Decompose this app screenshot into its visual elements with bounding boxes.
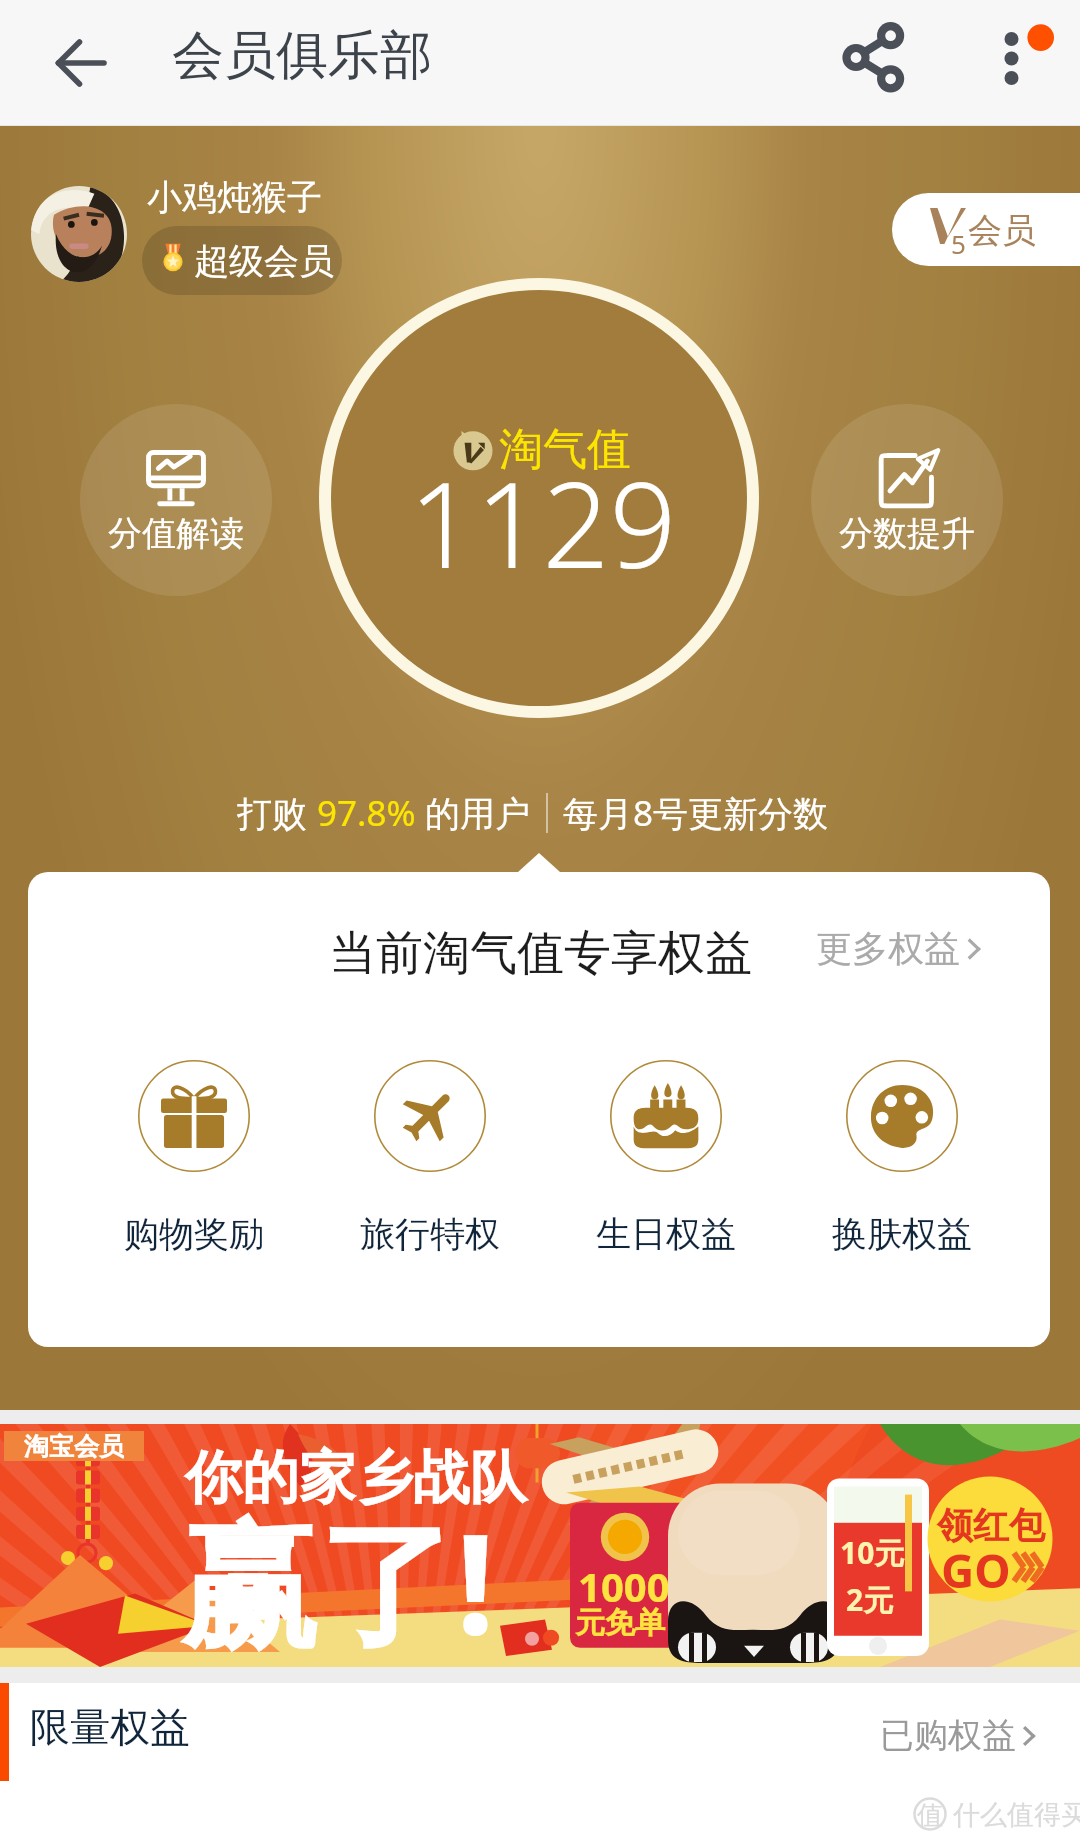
staticText: 每月8号更新分数 bbox=[563, 789, 829, 837]
button[interactable]: Promotion banner bbox=[0, 1424, 1080, 1667]
button[interactable]: 分值解读 bbox=[80, 404, 272, 596]
button[interactable]: Back bbox=[46, 28, 116, 98]
button[interactable]: 5 bbox=[892, 193, 1080, 266]
staticText: 更多权益 bbox=[816, 926, 960, 971]
staticText: 97.8% bbox=[317, 789, 416, 837]
button[interactable]: 生日权益 bbox=[586, 1060, 746, 1256]
staticText: 2元 bbox=[846, 1579, 894, 1620]
staticText: 淘宝会员 bbox=[24, 1431, 124, 1461]
staticText: 10元 bbox=[840, 1532, 905, 1573]
staticText: 淘气值 bbox=[499, 422, 631, 477]
button[interactable]: 更多权益 bbox=[816, 926, 990, 971]
staticText: 分数提升 bbox=[839, 512, 975, 555]
staticText: 生日权益 bbox=[596, 1212, 736, 1256]
staticText: 打败 bbox=[237, 789, 317, 837]
button[interactable]: 旅行特权 bbox=[350, 1060, 510, 1256]
staticText: 会员 bbox=[968, 209, 1036, 252]
button[interactable]: 限量权益 bbox=[0, 1683, 1080, 1781]
staticText: 限量权益 bbox=[30, 1702, 190, 1752]
staticText: 购物奖励 bbox=[124, 1212, 264, 1256]
staticText: 旅行特权 bbox=[360, 1212, 500, 1256]
staticText: 领红包 bbox=[937, 1503, 1045, 1548]
staticText: 小鸡炖猴子 bbox=[147, 175, 322, 219]
button[interactable]: Share bbox=[840, 18, 910, 88]
staticText: 什么值得买 bbox=[953, 1798, 1080, 1832]
staticText: 值 bbox=[917, 1799, 943, 1832]
staticText: 超级会员 bbox=[194, 239, 334, 283]
staticText: 1000 bbox=[578, 1559, 670, 1613]
button[interactable]: 购物奖励 bbox=[114, 1060, 274, 1256]
staticText: 赢了! bbox=[180, 1486, 495, 1667]
staticText: 已购权益 bbox=[880, 1714, 1016, 1757]
staticText: 元免单 bbox=[575, 1604, 665, 1642]
staticText: 的用户 bbox=[416, 789, 531, 837]
button[interactable]: More options bbox=[980, 12, 1060, 92]
button[interactable]: 超级会员 bbox=[142, 226, 342, 295]
staticText: 换肤权益 bbox=[832, 1212, 972, 1256]
staticText: 会员俱乐部 bbox=[172, 23, 432, 89]
staticText: GO bbox=[941, 1539, 1011, 1602]
button[interactable]: 分数提升 bbox=[811, 404, 1003, 596]
button[interactable]: 换肤权益 bbox=[822, 1060, 982, 1256]
staticText: 你的家乡战队 bbox=[185, 1442, 527, 1514]
staticText: 1129 bbox=[409, 443, 677, 602]
staticText: 当前淘气值专享权益 bbox=[329, 924, 752, 983]
staticText: 5 bbox=[951, 226, 966, 261]
staticText: 分值解读 bbox=[108, 512, 244, 555]
